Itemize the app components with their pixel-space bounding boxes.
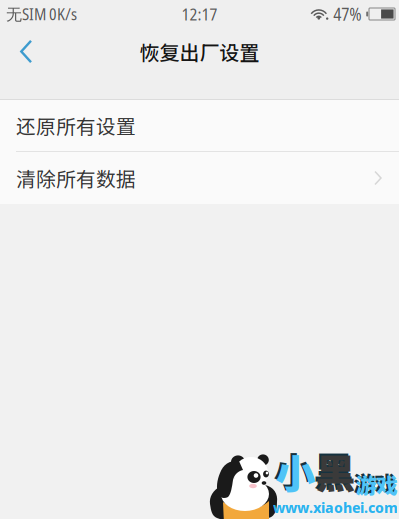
staticText: www.xiaohei.com [273, 498, 398, 517]
staticText: 恢复出厂设置 [139, 37, 259, 66]
staticText: 小 [275, 442, 315, 500]
staticText: 还原所有设置 [16, 111, 136, 140]
staticText: 47% [333, 2, 361, 26]
button[interactable]: Back [0, 28, 48, 74]
staticText: 无SIM 0K/s [6, 3, 77, 25]
button[interactable]: 清除所有数据 [0, 152, 399, 204]
staticText: 小黑 [273, 440, 353, 498]
staticText: 游戏 [355, 469, 397, 500]
staticText: 清除所有数据 [16, 164, 136, 192]
staticText: 12:17 [181, 3, 217, 25]
staticText: 黑 [315, 442, 355, 500]
button[interactable]: 还原所有设置 [0, 100, 399, 152]
staticText: 游戏 [353, 467, 395, 498]
